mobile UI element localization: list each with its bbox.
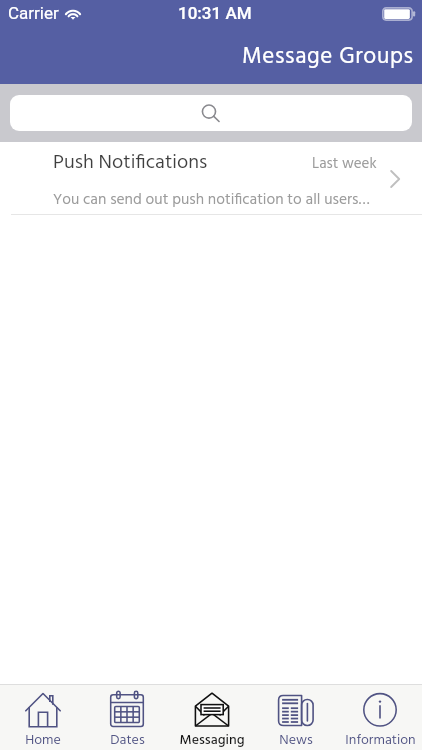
staticText: Last week bbox=[312, 152, 377, 176]
staticText: Messaging bbox=[179, 729, 245, 750]
staticText: Carrier bbox=[8, 3, 59, 23]
button[interactable]: Dates bbox=[85, 684, 170, 750]
staticText: Information bbox=[345, 729, 416, 750]
staticText: You can send out push notification to al… bbox=[53, 188, 370, 213]
staticText: Push Notifications bbox=[53, 147, 208, 179]
button[interactable]: Messaging bbox=[170, 684, 254, 750]
button[interactable]: Push Notifications bbox=[0, 142, 422, 214]
staticText: Dates bbox=[110, 729, 145, 750]
staticText: Home bbox=[25, 729, 61, 750]
staticText: Message Groups bbox=[242, 39, 414, 76]
button[interactable] bbox=[10, 95, 412, 131]
button[interactable]: Information bbox=[338, 684, 422, 750]
staticText: News bbox=[279, 729, 313, 750]
staticText: 10:31 AM bbox=[178, 3, 252, 23]
button[interactable]: Home bbox=[0, 684, 85, 750]
button[interactable]: News bbox=[254, 684, 338, 750]
